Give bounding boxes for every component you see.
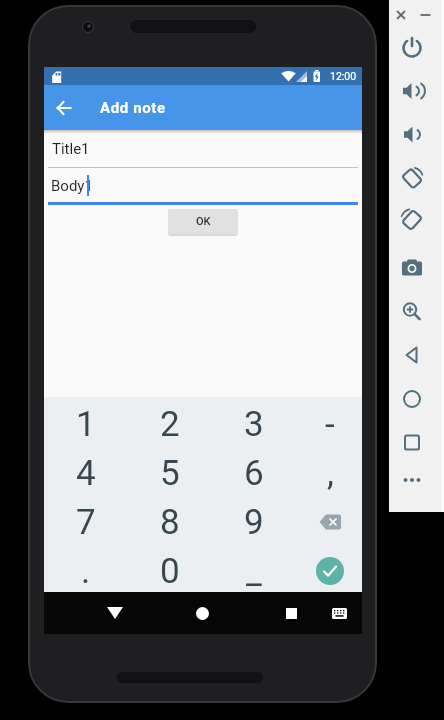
button[interactable]	[397, 205, 427, 235]
button[interactable]: OK	[168, 209, 238, 234]
button[interactable]: 0	[130, 547, 210, 595]
button[interactable]: 4	[46, 449, 126, 497]
button[interactable]	[44, 85, 84, 130]
button[interactable]	[397, 428, 427, 458]
button[interactable]	[397, 253, 427, 283]
button[interactable]: 2	[130, 400, 210, 448]
staticText: 1	[76, 404, 96, 445]
button[interactable]: 1	[46, 400, 126, 448]
button[interactable]	[397, 297, 427, 327]
staticText: 3	[244, 404, 264, 445]
button[interactable]	[397, 33, 427, 63]
button[interactable]	[290, 547, 370, 595]
button[interactable]	[397, 465, 427, 495]
button[interactable]: .	[46, 547, 126, 595]
staticText: Add note	[100, 99, 166, 117]
button[interactable]	[290, 498, 370, 546]
staticText: 9	[244, 502, 264, 543]
staticText: 2	[160, 404, 180, 445]
staticText: 8	[160, 502, 180, 543]
button[interactable]: 8	[130, 498, 210, 546]
button[interactable]	[397, 164, 427, 194]
button[interactable]: 3	[214, 400, 294, 448]
button[interactable]: 9	[214, 498, 294, 546]
staticText: -	[325, 404, 335, 445]
staticText: 5	[160, 453, 180, 494]
button[interactable]	[99, 597, 131, 629]
button[interactable]	[324, 597, 354, 629]
button[interactable]: -	[290, 400, 370, 448]
staticText: 6	[244, 453, 264, 494]
button[interactable]: ,	[290, 449, 370, 497]
button[interactable]	[397, 120, 427, 150]
staticText: 12:00	[330, 70, 357, 82]
button[interactable]	[397, 384, 427, 414]
button[interactable]: 7	[46, 498, 126, 546]
button[interactable]: 6	[214, 449, 294, 497]
button[interactable]	[186, 597, 218, 629]
button[interactable]	[275, 597, 307, 629]
button[interactable]	[397, 76, 427, 106]
staticText: 7	[76, 502, 96, 543]
staticText: Body1	[51, 177, 93, 195]
staticText: Title1	[52, 140, 90, 158]
staticText: 0	[160, 551, 180, 592]
button[interactable]	[397, 340, 427, 370]
staticText: 4	[76, 453, 96, 494]
button[interactable]: _	[214, 547, 294, 595]
staticText: .	[81, 551, 91, 592]
staticText: ,	[327, 453, 334, 494]
staticText: _	[246, 551, 262, 592]
button[interactable]: 5	[130, 449, 210, 497]
staticText: OK	[196, 215, 211, 228]
